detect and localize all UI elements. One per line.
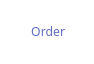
button[interactable]: Order — [0, 0, 94, 64]
staticText: Order — [31, 23, 65, 40]
